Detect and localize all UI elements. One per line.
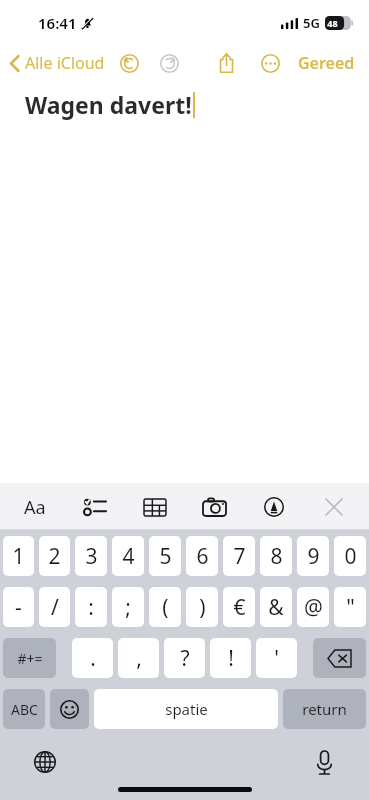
staticText: -: [15, 593, 22, 622]
button[interactable]: return: [283, 689, 366, 729]
staticText: /: [51, 593, 59, 622]
staticText: #+=: [17, 649, 43, 668]
button[interactable]: Text format: [14, 486, 56, 528]
button[interactable]: Checklist: [74, 486, 116, 528]
staticText: spatie: [165, 699, 208, 719]
staticText: 5G: [303, 14, 320, 32]
button[interactable]: Markup: [253, 486, 295, 528]
button[interactable]: 8: [260, 536, 292, 576]
staticText: Alle iCloud: [25, 52, 105, 74]
staticText: 9: [307, 542, 320, 571]
staticText: (: [162, 593, 169, 622]
staticText: ): [199, 593, 206, 622]
staticText: ': [274, 644, 279, 673]
button[interactable]: 5: [149, 536, 181, 576]
button[interactable]: Camera: [193, 486, 235, 528]
staticText: ?: [180, 644, 190, 673]
staticText: return: [302, 699, 347, 719]
button[interactable]: .: [72, 638, 113, 678]
button[interactable]: More options: [254, 47, 286, 79]
staticText: .: [90, 644, 96, 673]
staticText: 4: [122, 542, 135, 571]
button[interactable]: -: [3, 587, 34, 627]
button[interactable]: Table: [134, 486, 176, 528]
button[interactable]: 1: [3, 536, 34, 576]
button[interactable]: &: [260, 587, 292, 627]
staticText: 0: [344, 542, 357, 571]
staticText: 7: [233, 542, 246, 571]
staticText: 6: [196, 542, 209, 571]
button[interactable]: Share: [210, 47, 242, 79]
staticText: 5: [159, 542, 172, 571]
button[interactable]: Close keyboard: [313, 486, 355, 528]
button[interactable]: 3: [75, 536, 107, 576]
staticText: 2: [48, 542, 61, 571]
staticText: Wagen davert!: [25, 89, 192, 120]
button[interactable]: 0: [334, 536, 366, 576]
staticText: 8: [270, 542, 283, 571]
button[interactable]: :: [75, 587, 107, 627]
button[interactable]: @: [297, 587, 329, 627]
staticText: ,: [136, 644, 142, 673]
button[interactable]: 7: [223, 536, 255, 576]
button[interactable]: Emoji: [50, 689, 89, 729]
button[interactable]: spatie: [94, 689, 278, 729]
button[interactable]: ): [186, 587, 218, 627]
button[interactable]: €: [223, 587, 255, 627]
button[interactable]: ": [334, 587, 366, 627]
button[interactable]: ?: [164, 638, 205, 678]
staticText: 16:41: [38, 13, 77, 33]
staticText: Gereed: [298, 52, 355, 74]
button[interactable]: /: [39, 587, 70, 627]
button[interactable]: Alle iCloud: [7, 48, 108, 78]
staticText: @: [304, 593, 323, 622]
button[interactable]: 9: [297, 536, 329, 576]
button[interactable]: Backspace: [313, 638, 366, 678]
button[interactable]: ,: [118, 638, 159, 678]
staticText: 1: [12, 542, 25, 571]
button[interactable]: ;: [112, 587, 144, 627]
staticText: 48: [327, 17, 338, 29]
staticText: ABC: [11, 700, 38, 719]
button[interactable]: Dictation: [307, 745, 341, 779]
button[interactable]: 4: [112, 536, 144, 576]
staticText: €: [233, 593, 246, 622]
button[interactable]: 2: [39, 536, 70, 576]
staticText: ;: [125, 593, 131, 622]
staticText: !: [228, 644, 234, 673]
staticText: :: [88, 593, 94, 622]
button[interactable]: !: [210, 638, 251, 678]
button[interactable]: ABC: [3, 689, 45, 729]
staticText: ": [346, 593, 355, 622]
button[interactable]: (: [149, 587, 181, 627]
button[interactable]: Undo: [114, 48, 144, 78]
button[interactable]: Change keyboard language: [28, 745, 62, 779]
staticText: 3: [85, 542, 98, 571]
staticText: &: [268, 593, 284, 622]
button[interactable]: ': [256, 638, 297, 678]
button[interactable]: 6: [186, 536, 218, 576]
button[interactable]: Gereed: [294, 48, 359, 78]
staticText: Aa: [24, 495, 46, 520]
button[interactable]: #+=: [3, 638, 56, 678]
button[interactable]: Redo: [154, 48, 184, 78]
